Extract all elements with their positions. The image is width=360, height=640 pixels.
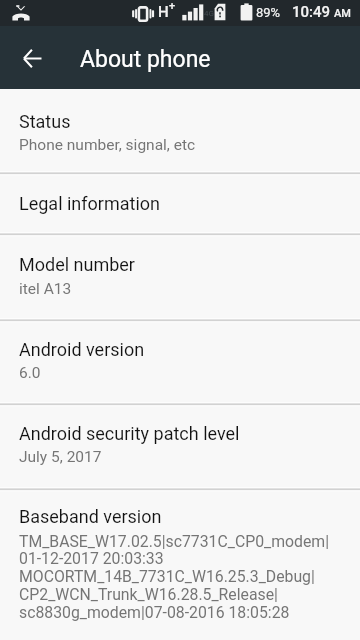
staticText: Legal information	[19, 193, 160, 214]
staticText: AM	[334, 7, 351, 20]
button[interactable]: Legal information	[0, 173, 360, 234]
staticText: 10:49	[292, 3, 331, 21]
staticText: H	[158, 3, 169, 21]
staticText: Baseband version	[19, 506, 162, 527]
staticText: July 5, 2017	[19, 448, 102, 466]
staticText: Status	[19, 111, 71, 132]
staticText: About phone	[80, 46, 211, 73]
staticText: 6.0	[19, 364, 41, 382]
staticText: TM_BASE_W17.02.5|sc7731C_CP0_modem| 01-1…	[19, 532, 330, 622]
staticText: Phone number, signal, etc	[19, 136, 196, 154]
staticText: itel A13	[19, 280, 72, 298]
button[interactable]: Back	[8, 34, 56, 82]
staticText: Android version	[19, 339, 145, 360]
button[interactable]: Model number	[0, 234, 360, 320]
staticText: 4G	[204, 9, 214, 18]
staticText: +	[169, 0, 176, 13]
button[interactable]: Baseband version	[0, 489, 360, 640]
staticText: Model number	[19, 254, 135, 275]
staticText: 89%	[256, 5, 281, 20]
button[interactable]: Android version	[0, 320, 360, 404]
staticText: Android security patch level	[19, 423, 240, 444]
button[interactable]: Status	[0, 89, 360, 173]
button[interactable]: Android security patch level	[0, 404, 360, 489]
